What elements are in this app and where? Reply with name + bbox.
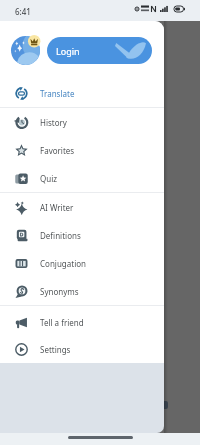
button[interactable]: Favorites — [0, 136, 164, 164]
staticText: Synonyms — [40, 286, 79, 297]
staticText: Settings — [40, 344, 71, 355]
button[interactable]: Tell a friend — [0, 308, 164, 336]
button[interactable]: Translate — [0, 79, 164, 107]
button[interactable]: Settings — [0, 336, 164, 363]
button[interactable]: Login — [47, 37, 152, 64]
button[interactable]: Conjugation — [0, 249, 164, 277]
button[interactable]: Definitions — [0, 221, 164, 249]
staticText: Favorites — [40, 145, 75, 156]
button[interactable]: AI Writer — [0, 193, 164, 221]
staticText: Translate — [40, 88, 75, 99]
staticText: Definitions — [40, 230, 81, 241]
staticText: History — [40, 117, 67, 128]
staticText: Login — [56, 45, 80, 57]
button[interactable]: Synonyms — [0, 277, 164, 305]
button[interactable]: History — [0, 108, 164, 136]
staticText: Quiz — [40, 173, 58, 184]
staticText: AI Writer — [40, 202, 74, 213]
button[interactable]: Quiz — [0, 164, 164, 192]
staticText: Tell a friend — [40, 317, 84, 328]
staticText: 6:41 — [15, 6, 31, 17]
staticText: Conjugation — [40, 258, 86, 269]
